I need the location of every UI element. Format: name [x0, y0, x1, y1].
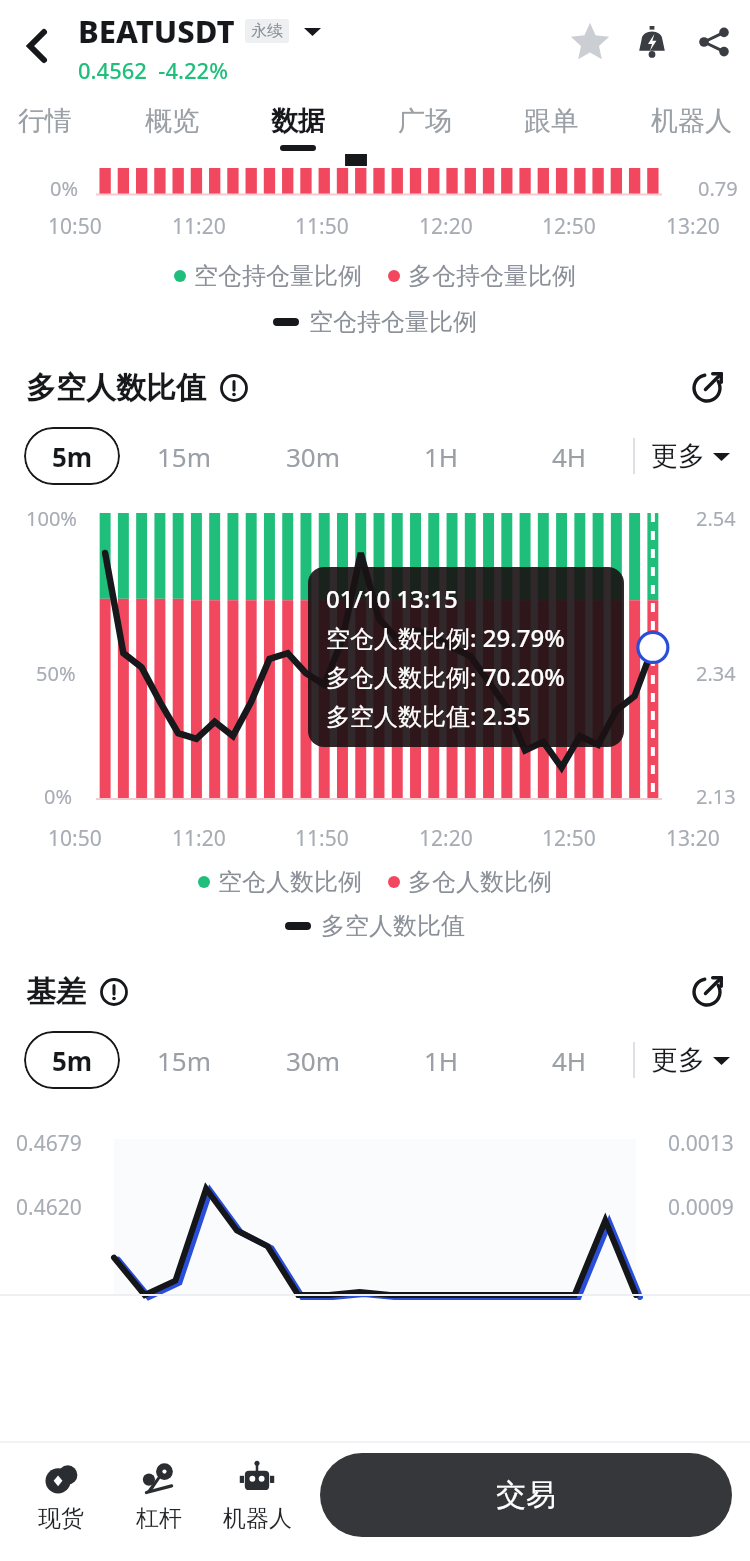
staticText: 10:50: [48, 212, 102, 241]
staticText: 空仓持仓量比例: [194, 261, 362, 291]
button[interactable]: 机器人: [649, 104, 734, 145]
staticText: 数据: [271, 104, 325, 138]
staticText: 100%: [26, 505, 77, 532]
button[interactable]: 15m: [120, 1031, 249, 1089]
staticText: 空仓持仓量比例: [309, 307, 477, 337]
staticText: 30m: [286, 1043, 341, 1078]
button[interactable]: 15m: [120, 427, 249, 485]
button[interactable]: 机器人: [208, 1456, 306, 1535]
button[interactable]: 5m: [24, 427, 120, 485]
staticText: 跟单: [524, 104, 578, 138]
staticText: 多空人数比值: [26, 369, 206, 407]
staticText: 广场: [398, 104, 452, 138]
staticText: 4H: [552, 439, 587, 474]
button[interactable]: Switch contract: [299, 18, 325, 44]
staticText: 1H: [424, 439, 459, 474]
staticText: 机器人: [651, 104, 732, 138]
staticText: BEATUSDT: [78, 10, 235, 52]
staticText: 13:20: [666, 212, 720, 241]
button[interactable]: Favorite: [564, 16, 616, 68]
staticText: 多仓人数比例: [408, 867, 552, 897]
staticText: 11:20: [172, 212, 226, 241]
staticText: 现货: [38, 1504, 84, 1533]
staticText: 13:20: [666, 824, 720, 853]
staticText: 12:50: [542, 824, 596, 853]
button[interactable]: Open full chart: [682, 363, 732, 413]
button[interactable]: Back: [8, 18, 64, 74]
staticText: 10:50: [48, 824, 102, 853]
staticText: 5m: [52, 1043, 93, 1078]
staticText: 多空人数比值: [321, 911, 465, 941]
staticText: 12:20: [419, 212, 473, 241]
staticText: 1H: [424, 1043, 459, 1078]
button[interactable]: Price alert: [626, 16, 678, 68]
staticText: 12:50: [542, 212, 596, 241]
button[interactable]: 5m: [24, 1031, 120, 1089]
staticText: 11:20: [172, 824, 226, 853]
staticText: 机器人: [223, 1504, 292, 1533]
button[interactable]: Share: [688, 16, 740, 68]
staticText: 永续: [251, 21, 283, 41]
staticText: 行情: [18, 104, 72, 138]
staticText: 0.0009: [668, 1193, 734, 1222]
staticText: 15m: [157, 439, 212, 474]
staticText: 2.54: [696, 505, 736, 532]
staticText: 更多: [651, 439, 705, 473]
staticText: 0.4620: [16, 1193, 82, 1222]
button[interactable]: 30m: [249, 1031, 377, 1089]
staticText: 15m: [157, 1043, 212, 1078]
staticText: 12:20: [419, 824, 473, 853]
button[interactable]: 跟单: [522, 104, 580, 145]
button[interactable]: 1H: [377, 427, 505, 485]
staticText: 更多: [651, 1043, 705, 1077]
button[interactable]: 更多: [635, 439, 730, 473]
staticText: 2.34: [696, 660, 736, 687]
button[interactable]: 行情: [16, 104, 74, 145]
button[interactable]: 1H: [377, 1031, 505, 1089]
button[interactable]: Open full chart: [682, 967, 732, 1017]
staticText: 50%: [36, 660, 76, 687]
staticText: 空仓人数比例: [218, 867, 362, 897]
staticText: 0.79: [698, 175, 738, 202]
staticText: 30m: [286, 439, 341, 474]
staticText: 0.0013: [668, 1129, 734, 1158]
button[interactable]: Info: [96, 974, 132, 1010]
button[interactable]: Info: [216, 370, 252, 406]
staticText: 11:50: [295, 824, 349, 853]
staticText: 多仓人数比例: 70.20%: [326, 660, 565, 693]
staticText: 0%: [50, 175, 79, 202]
staticText: 11:50: [295, 212, 349, 241]
staticText: 0.4679: [16, 1129, 82, 1158]
button[interactable]: 现货: [12, 1456, 110, 1535]
button[interactable]: 数据: [269, 104, 327, 151]
button[interactable]: 4H: [505, 1031, 633, 1089]
staticText: 5m: [52, 439, 93, 474]
button[interactable]: 更多: [635, 1043, 730, 1077]
staticText: 交易: [496, 1476, 556, 1514]
staticText: 基差: [26, 973, 86, 1011]
staticText: 杠杆: [136, 1504, 182, 1533]
staticText: 概览: [145, 104, 199, 138]
staticText: 多仓持仓量比例: [408, 261, 576, 291]
button[interactable]: 广场: [396, 104, 454, 145]
staticText: 4H: [552, 1043, 587, 1078]
button[interactable]: 30m: [249, 427, 377, 485]
staticText: 0%: [44, 783, 73, 810]
staticText: 多空人数比值: 2.35: [326, 699, 531, 732]
staticText: 01/10 13:15: [326, 582, 458, 615]
button[interactable]: 杠杆: [110, 1456, 208, 1535]
staticText: 空仓人数比例: 29.79%: [326, 621, 565, 654]
button[interactable]: 4H: [505, 427, 633, 485]
staticText: 2.13: [696, 783, 736, 810]
staticText: 0.4562 -4.22%: [78, 55, 228, 85]
button[interactable]: 概览: [143, 104, 201, 145]
button[interactable]: 交易: [320, 1453, 732, 1537]
